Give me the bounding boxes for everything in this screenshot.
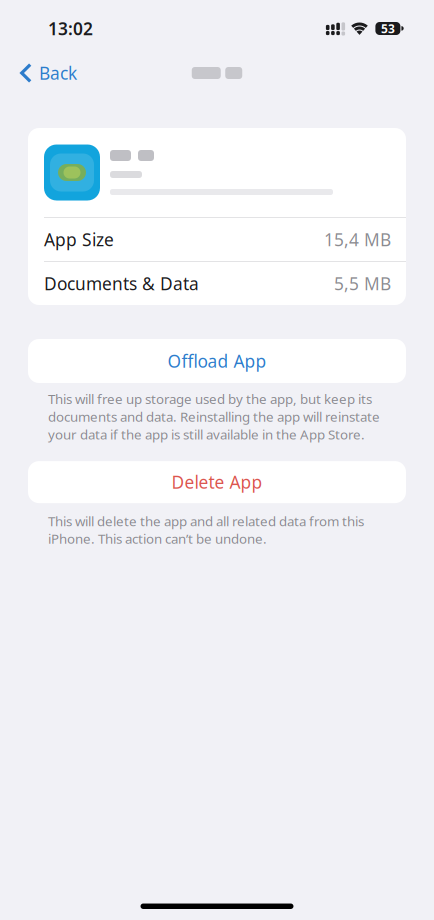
staticText: This will free up storage used by the ap… <box>48 390 380 443</box>
staticText: 5,5 MB <box>334 272 391 295</box>
staticText: Documents & Data <box>44 272 199 295</box>
staticText: This will delete the app and all related… <box>48 512 364 547</box>
staticText: 53 <box>381 20 395 36</box>
button[interactable]: Delete App <box>28 461 406 503</box>
button[interactable]: Offload App <box>28 339 406 383</box>
staticText: Offload App <box>167 349 266 372</box>
staticText: App Size <box>44 228 114 251</box>
staticText: 13:02 <box>48 17 93 40</box>
staticText: Back <box>39 61 77 84</box>
staticText: Delete App <box>171 471 262 494</box>
staticText: 15,4 MB <box>324 228 391 251</box>
button[interactable]: Back <box>14 53 83 92</box>
